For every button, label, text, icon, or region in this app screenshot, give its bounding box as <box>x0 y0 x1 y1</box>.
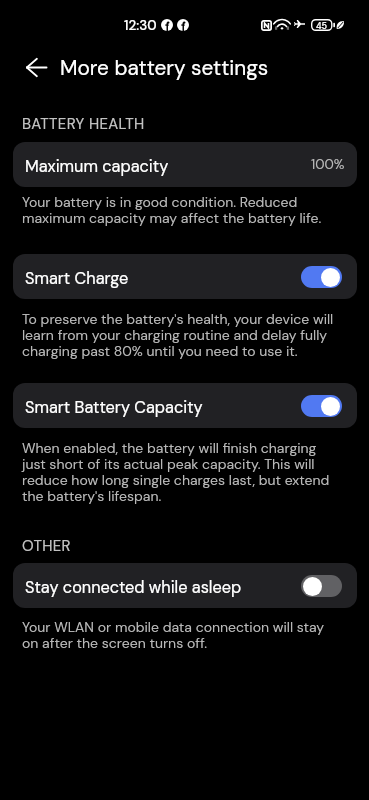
staticText: Your battery is in good condition. Reduc… <box>22 195 340 227</box>
button[interactable]: Smart Charge <box>13 254 357 299</box>
button[interactable]: Toggle off <box>301 575 342 597</box>
staticText: 100% <box>311 156 345 174</box>
staticText: BATTERY HEALTH <box>22 114 145 134</box>
button[interactable]: Maximum capacity <box>13 142 357 187</box>
button[interactable]: Toggle on <box>301 266 342 288</box>
staticText: Your WLAN or mobile data connection will… <box>22 620 340 652</box>
staticText: 45 <box>316 20 328 32</box>
button[interactable]: Smart Battery Capacity <box>13 383 357 428</box>
staticText: To preserve the battery's health, your d… <box>22 312 340 360</box>
button[interactable]: Toggle on <box>301 395 342 417</box>
staticText: Smart Charge <box>25 268 129 289</box>
staticText: Maximum capacity <box>25 156 169 177</box>
staticText: 12:30 <box>124 17 157 35</box>
staticText: When enabled, the battery will finish ch… <box>22 441 340 505</box>
button[interactable]: Stay connected while asleep <box>13 563 357 608</box>
staticText: Stay connected while asleep <box>25 577 242 598</box>
staticText: Smart Battery Capacity <box>25 397 203 418</box>
staticText: OTHER <box>22 536 71 556</box>
staticText: More battery settings <box>60 54 269 81</box>
button[interactable]: Back <box>14 45 58 89</box>
